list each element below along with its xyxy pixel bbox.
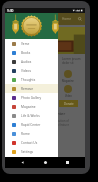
button[interactable]: Books xyxy=(5,48,58,57)
staticText: Rapid Center xyxy=(21,123,41,127)
staticText: Settings xyxy=(21,150,34,154)
staticText: Donate xyxy=(64,102,74,106)
button[interactable]: Thoughts xyxy=(5,75,58,84)
staticText: Thoughts xyxy=(21,78,36,82)
button[interactable]: Donate xyxy=(59,100,78,107)
staticText: Videos xyxy=(21,69,31,73)
staticText: Lorem ipsum dolor sit xyxy=(62,57,81,65)
staticText: Rome xyxy=(21,132,30,136)
button[interactable]: Rapid Center xyxy=(5,120,58,129)
button[interactable]: Magazine xyxy=(5,102,58,111)
button[interactable]: Photo Gallery xyxy=(5,93,58,102)
staticText: Verse xyxy=(21,42,30,46)
button[interactable]: Video xyxy=(64,85,72,93)
staticText: Books xyxy=(21,51,31,55)
staticText: Magazine xyxy=(62,79,74,83)
staticText: Remove xyxy=(21,87,34,91)
button[interactable]: Back xyxy=(17,157,28,168)
staticText: Center xyxy=(52,111,85,117)
button[interactable]: Videos xyxy=(5,66,58,75)
staticText: Audios xyxy=(21,60,32,64)
button[interactable]: Audios xyxy=(5,57,58,66)
button[interactable]: Life & Works xyxy=(5,111,58,120)
staticText: institution of open feature xyxy=(52,119,85,127)
button[interactable]: Verse xyxy=(5,39,58,48)
staticText: Video xyxy=(65,94,72,98)
staticText: 9:30 xyxy=(7,9,14,13)
button[interactable]: Rome xyxy=(5,129,58,138)
button[interactable]: Recents xyxy=(62,157,73,168)
staticText: Life & Works xyxy=(21,114,40,118)
staticText: Home xyxy=(62,17,72,21)
staticText: Photo Gallery xyxy=(21,96,42,100)
button[interactable]: Contact Us xyxy=(5,138,58,147)
button[interactable]: Home xyxy=(40,157,51,168)
staticText: Magazine xyxy=(21,105,36,109)
button[interactable]: Settings xyxy=(5,147,58,156)
other: Search xyxy=(78,17,82,21)
button[interactable]: Magazine xyxy=(64,70,72,78)
staticText: Contact Us xyxy=(21,141,38,145)
button[interactable]: Remove xyxy=(5,84,58,93)
